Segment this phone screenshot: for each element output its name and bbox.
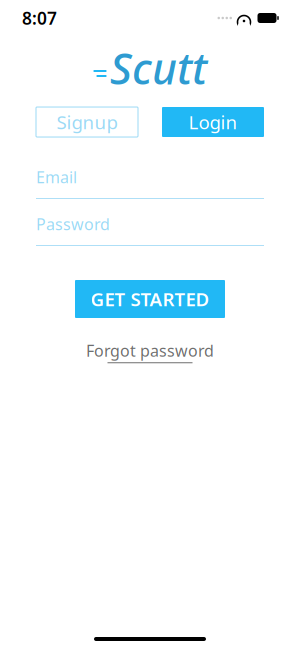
button[interactable]: GET STARTED: [75, 280, 225, 318]
staticText: GET STARTED: [90, 287, 209, 311]
staticText: Scutt: [110, 40, 207, 96]
staticText: Password: [36, 213, 110, 235]
staticText: 8:07: [22, 6, 57, 29]
staticText: Signup: [56, 110, 117, 134]
button[interactable]: Login: [162, 107, 264, 137]
staticText: Login: [188, 110, 237, 134]
button[interactable]: Signup: [36, 107, 138, 137]
staticText: Email: [36, 166, 77, 188]
button[interactable]: Forgot password: [80, 336, 220, 367]
staticText: Forgot password: [86, 340, 214, 361]
